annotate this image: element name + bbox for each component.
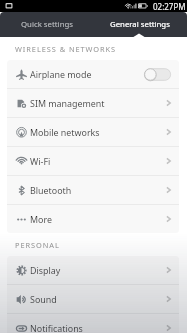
staticText: Notifications [30, 322, 83, 333]
button[interactable]: Bluetooth [7, 176, 179, 204]
staticText: PERSONAL [15, 240, 187, 250]
button[interactable]: Display [7, 256, 179, 284]
button[interactable]: General settings [93, 12, 187, 37]
other: Open [166, 323, 171, 333]
staticText: Sound [30, 293, 57, 305]
button[interactable]: Airplane mode toggle [144, 68, 171, 81]
button[interactable]: Wi-Fi [7, 147, 179, 175]
button[interactable]: Mobile networks [7, 118, 179, 146]
other: Open [166, 185, 171, 195]
button[interactable]: Notifications [7, 314, 179, 333]
button[interactable]: Airplane mode [7, 60, 179, 88]
other: Open [166, 265, 171, 275]
staticText: General settings [110, 19, 170, 30]
button[interactable]: SIM management [7, 89, 179, 117]
staticText: SIM management [30, 97, 105, 109]
button[interactable]: Sound [7, 285, 179, 313]
staticText: 02:27PM [153, 1, 186, 12]
other: Open [166, 294, 171, 304]
other: Open [166, 98, 171, 108]
button[interactable]: More [7, 205, 179, 233]
staticText: Quick settings [21, 19, 73, 30]
other: Open [166, 127, 171, 137]
staticText: Bluetooth [30, 184, 72, 196]
button[interactable]: Quick settings [0, 12, 93, 37]
other: Open [166, 214, 171, 224]
staticText: Airplane mode [30, 68, 92, 80]
staticText: Display [30, 264, 61, 276]
staticText: More [30, 213, 52, 225]
staticText: Wi-Fi [30, 155, 51, 167]
other: Open [166, 156, 171, 166]
staticText: Mobile networks [30, 126, 100, 138]
staticText: WIRELESS & NETWORKS [15, 44, 187, 54]
